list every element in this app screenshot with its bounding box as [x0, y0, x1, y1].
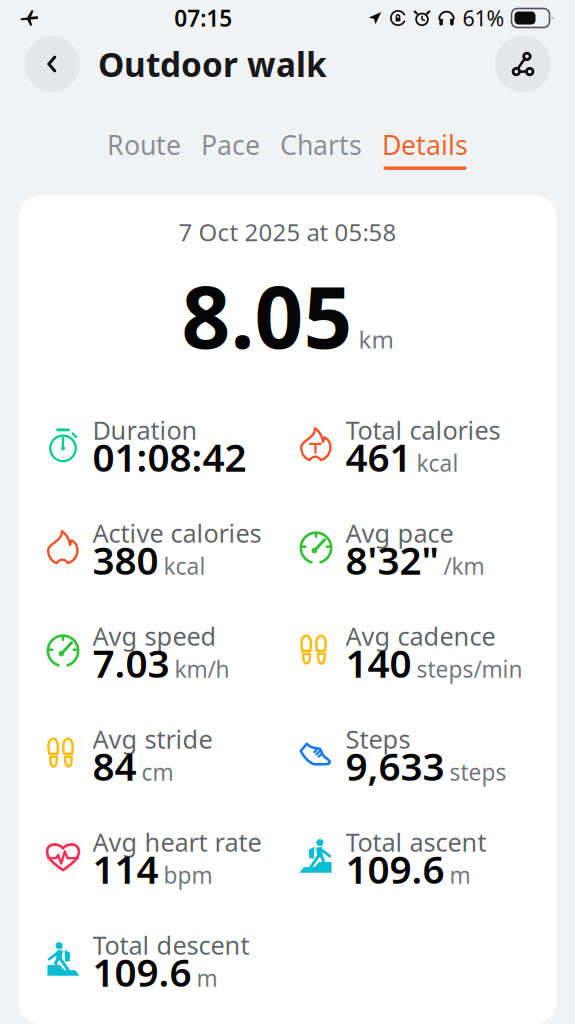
staticText: km/h: [174, 654, 229, 684]
staticText: m: [196, 963, 217, 993]
staticText: Avg stride: [92, 722, 212, 756]
staticText: Total calories: [345, 413, 500, 447]
staticText: 07:15: [174, 3, 232, 33]
staticText: Charts: [280, 127, 362, 162]
staticText: kcal: [416, 448, 458, 478]
button[interactable]: Pace: [201, 127, 260, 170]
staticText: Total descent: [92, 928, 249, 962]
staticText: km: [358, 323, 393, 355]
staticText: bpm: [163, 860, 212, 890]
staticText: 84: [92, 740, 136, 791]
staticText: 01:08:42: [92, 431, 246, 482]
staticText: steps/min: [416, 654, 522, 684]
staticText: m: [449, 860, 470, 890]
staticText: 380: [92, 534, 158, 585]
button[interactable]: Route: [107, 127, 181, 170]
staticText: 8'32": [345, 534, 438, 585]
button[interactable]: Back: [24, 36, 80, 92]
button[interactable]: Share: [495, 36, 551, 92]
staticText: 9,633: [345, 740, 444, 791]
staticText: 109.6: [92, 946, 191, 997]
staticText: 461: [345, 431, 411, 482]
staticText: /km: [443, 551, 484, 581]
staticText: 140: [345, 637, 411, 688]
staticText: cm: [141, 757, 173, 787]
staticText: 8.05: [181, 259, 352, 372]
staticText: 114: [92, 843, 158, 894]
staticText: Avg cadence: [345, 619, 495, 653]
staticText: steps: [449, 757, 506, 787]
staticText: 7.03: [92, 637, 169, 688]
staticText: Duration: [92, 413, 197, 447]
staticText: Avg heart rate: [92, 825, 261, 859]
staticText: Avg speed: [92, 619, 216, 653]
staticText: Outdoor walk: [98, 42, 327, 86]
staticText: Pace: [201, 127, 260, 162]
staticText: Total ascent: [345, 825, 486, 859]
staticText: 61%: [462, 4, 504, 32]
staticText: Steps: [345, 722, 410, 756]
staticText: Details: [382, 127, 468, 162]
staticText: Route: [107, 127, 181, 162]
staticText: Avg pace: [345, 516, 453, 550]
button[interactable]: Details: [382, 127, 468, 170]
staticText: 7 Oct 2025 at 05:58: [178, 216, 396, 248]
staticText: kcal: [163, 551, 205, 581]
staticText: 109.6: [345, 843, 444, 894]
staticText: Active calories: [92, 516, 261, 550]
button[interactable]: Charts: [280, 127, 362, 170]
